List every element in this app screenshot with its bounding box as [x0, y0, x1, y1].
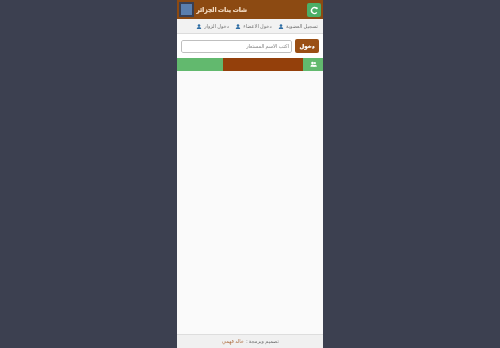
staticText: خالد فهمي [222, 338, 244, 345]
staticText: تسجيل العضوية [286, 23, 318, 30]
staticText: دخول الزوار [204, 23, 229, 30]
button[interactable]: تسجيل العضوية [278, 19, 318, 34]
staticText: دخول الاعضاء [243, 23, 272, 30]
button[interactable]: Refresh [307, 3, 321, 17]
button[interactable]: خالد فهمي [222, 338, 244, 345]
staticText: شات بنات الجزائر [196, 6, 247, 14]
button[interactable]: دخول [295, 39, 319, 53]
button[interactable]: دخول الاعضاء [235, 19, 272, 34]
button[interactable]: Users [303, 58, 323, 71]
staticText: دخول [299, 43, 315, 49]
staticText: : تصميم وبرمجة [246, 338, 279, 345]
button[interactable]: اكتب الاسم المستعار [181, 40, 292, 53]
button[interactable]: دخول الزوار [196, 19, 229, 34]
staticText: اكتب الاسم المستعار [246, 43, 289, 50]
